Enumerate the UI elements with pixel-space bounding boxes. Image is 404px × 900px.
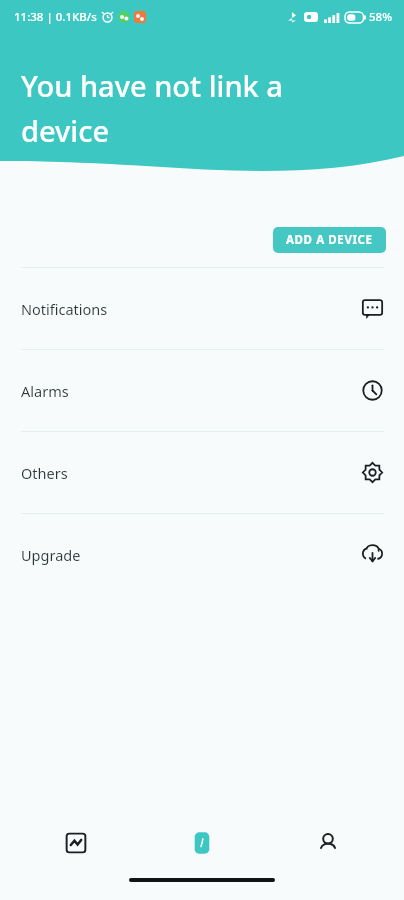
staticText: device <box>21 111 110 150</box>
button[interactable]: Device <box>152 810 252 876</box>
button[interactable]: Upgrade <box>0 514 404 595</box>
button[interactable]: Profile <box>278 810 378 876</box>
button[interactable]: Alarms <box>0 350 404 431</box>
staticText: Upgrade <box>21 545 81 565</box>
button[interactable]: Notifications <box>0 268 404 349</box>
button[interactable]: Others <box>0 432 404 513</box>
staticText: You have not link a <box>21 66 283 105</box>
staticText: Others <box>21 463 68 483</box>
staticText: 11:38 | 0.1KB/s <box>14 9 97 25</box>
staticText: 58% <box>369 9 392 25</box>
button[interactable]: ADD A DEVICE <box>273 227 386 253</box>
staticText: ADD A DEVICE <box>286 232 373 248</box>
staticText: Alarms <box>21 381 69 401</box>
button[interactable]: Activity <box>26 810 126 876</box>
staticText: Notifications <box>21 299 108 319</box>
